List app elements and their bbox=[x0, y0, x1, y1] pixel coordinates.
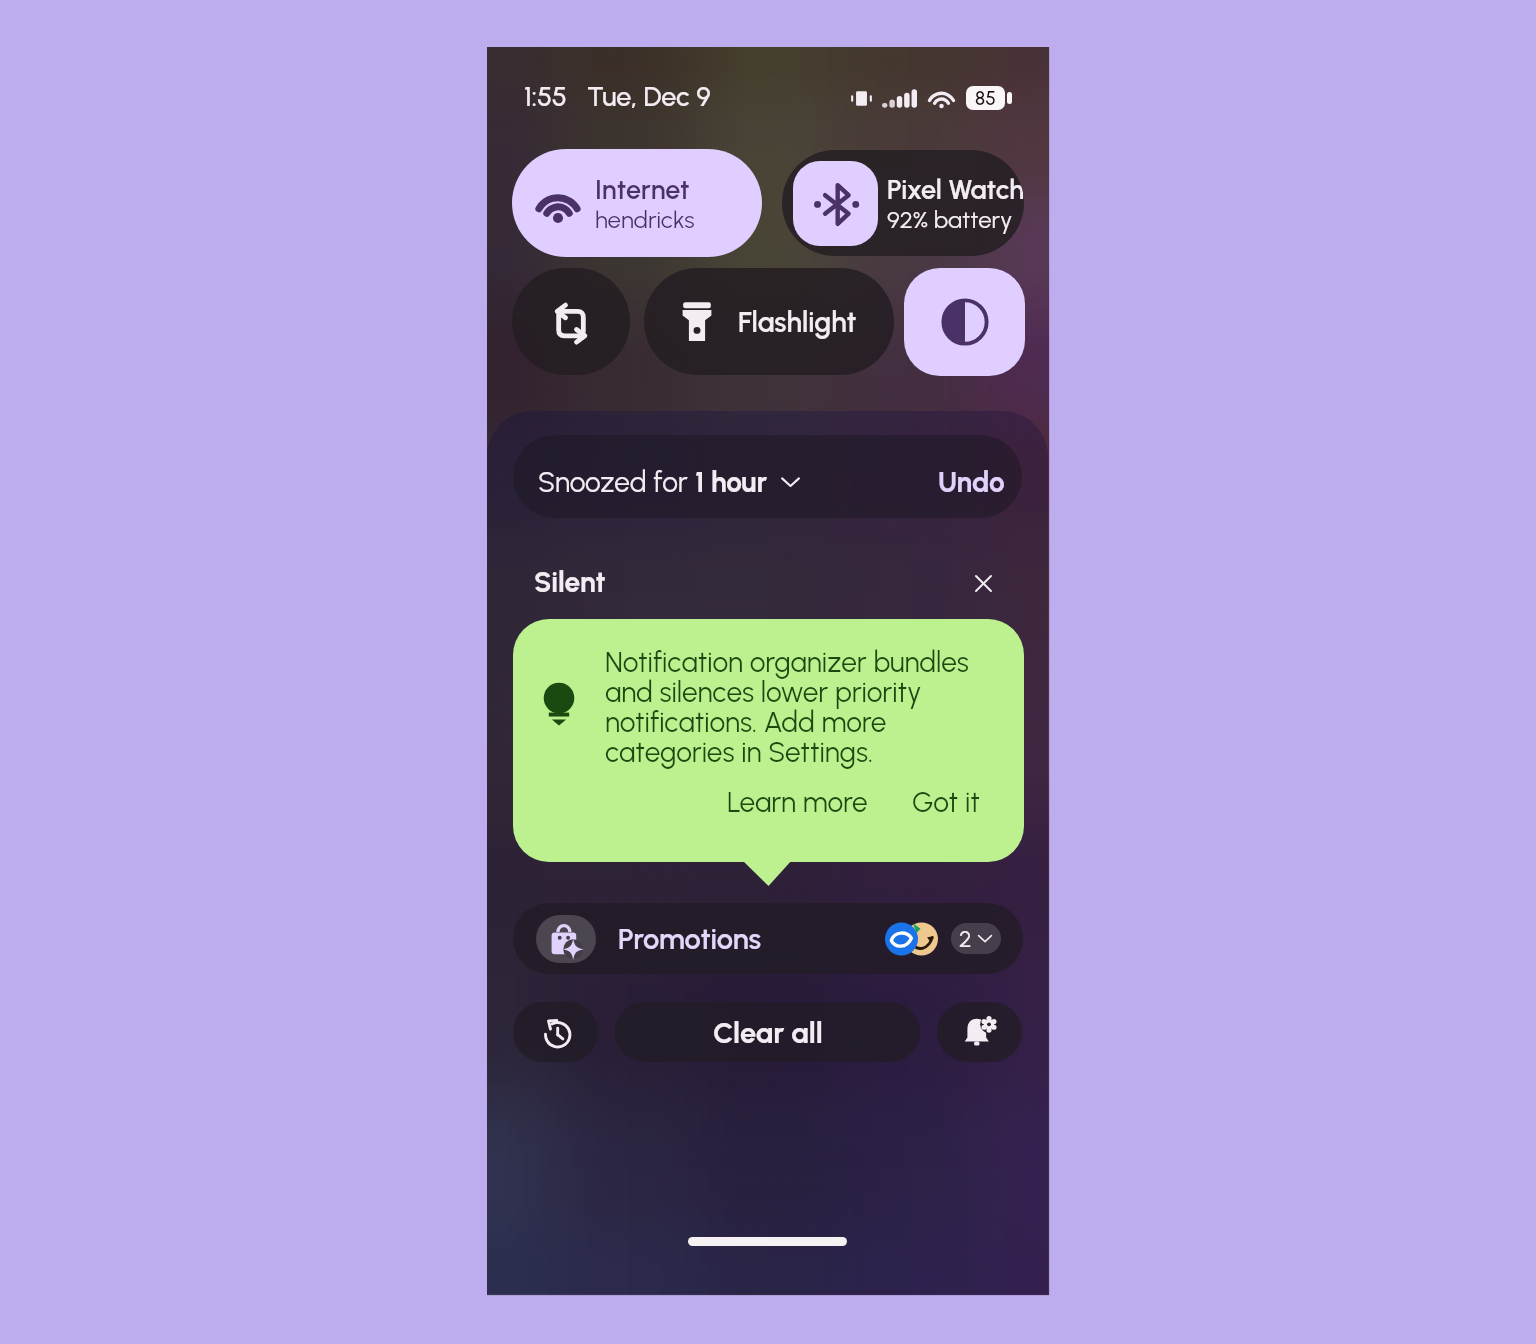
staticText: Undo bbox=[938, 465, 1005, 499]
staticText: 1 hour bbox=[695, 465, 768, 499]
staticText: Got it bbox=[912, 785, 980, 819]
staticText: 1:55 bbox=[524, 80, 567, 112]
staticText: Notification organizer bundles and silen… bbox=[605, 645, 969, 769]
staticText: Pixel Watch bbox=[887, 173, 1024, 205]
staticText: 85 bbox=[975, 87, 996, 110]
staticText: hendricks bbox=[595, 205, 695, 234]
button[interactable]: Learn more bbox=[719, 779, 876, 825]
staticText: Snoozed for bbox=[538, 465, 695, 499]
staticText: 2 bbox=[959, 925, 972, 953]
button[interactable]: Clear all bbox=[615, 1002, 920, 1062]
staticText: Flashlight bbox=[738, 305, 857, 339]
button[interactable]: Internet bbox=[512, 149, 762, 257]
button[interactable]: Flashlight bbox=[644, 268, 894, 375]
staticText: Silent bbox=[534, 565, 606, 599]
staticText: Tue, Dec 9 bbox=[587, 80, 711, 112]
button[interactable]: Dismiss Silent section bbox=[960, 560, 1006, 606]
staticText: Clear all bbox=[713, 1015, 823, 1050]
button[interactable]: Promotions bbox=[513, 903, 1023, 974]
button[interactable]: Notification settings bbox=[937, 1002, 1022, 1062]
button[interactable]: Pixel Watch bbox=[782, 150, 1024, 256]
staticText: Learn more bbox=[727, 785, 868, 819]
staticText: Promotions bbox=[618, 921, 762, 956]
staticText: Internet bbox=[595, 173, 690, 205]
button[interactable]: Notification history bbox=[513, 1002, 598, 1062]
button[interactable]: Dark theme bbox=[904, 268, 1025, 376]
staticText: 92% battery bbox=[887, 205, 1013, 234]
button[interactable]: Snoozed for bbox=[513, 435, 1022, 518]
button[interactable]: Got it bbox=[904, 779, 988, 825]
button[interactable]: Auto-rotate bbox=[512, 268, 630, 375]
